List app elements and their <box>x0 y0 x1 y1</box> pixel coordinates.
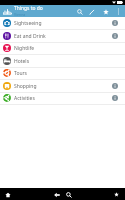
button[interactable]: Shopping <box>0 80 125 93</box>
button[interactable]: Back <box>52 190 61 199</box>
button[interactable]: Home <box>3 190 12 199</box>
staticText: Shopping <box>14 83 37 90</box>
button[interactable]: Activities <box>0 92 125 105</box>
staticText: Activities <box>14 95 35 102</box>
button[interactable]: Nightlife <box>0 42 125 55</box>
button[interactable]: Bookmark <box>112 190 121 199</box>
staticText: Tours <box>14 70 28 77</box>
button[interactable]: App logo <box>2 6 13 17</box>
staticText: Eat and Drink <box>14 33 46 40</box>
button[interactable]: More info about Activities <box>110 93 120 103</box>
staticText: Nightlife <box>14 45 35 52</box>
button[interactable]: More info about Shopping <box>110 81 120 91</box>
button[interactable]: Eat and Drink <box>0 30 125 43</box>
button[interactable]: Search <box>74 6 85 17</box>
staticText: Hotels <box>14 58 30 65</box>
button[interactable]: Favorites <box>100 6 111 17</box>
button[interactable]: More info about Eat and Drink <box>110 31 120 41</box>
button[interactable]: Search <box>64 190 73 199</box>
button[interactable]: More info about Sightseeing <box>110 18 120 28</box>
button[interactable]: Edit <box>86 6 97 17</box>
button[interactable]: Tours <box>0 67 125 80</box>
staticText: Vienna <box>14 12 26 17</box>
staticText: Things to do <box>14 5 43 12</box>
button[interactable]: Sightseeing <box>0 17 125 30</box>
staticText: Sightseeing <box>14 20 42 27</box>
button[interactable]: Hotels <box>0 55 125 68</box>
